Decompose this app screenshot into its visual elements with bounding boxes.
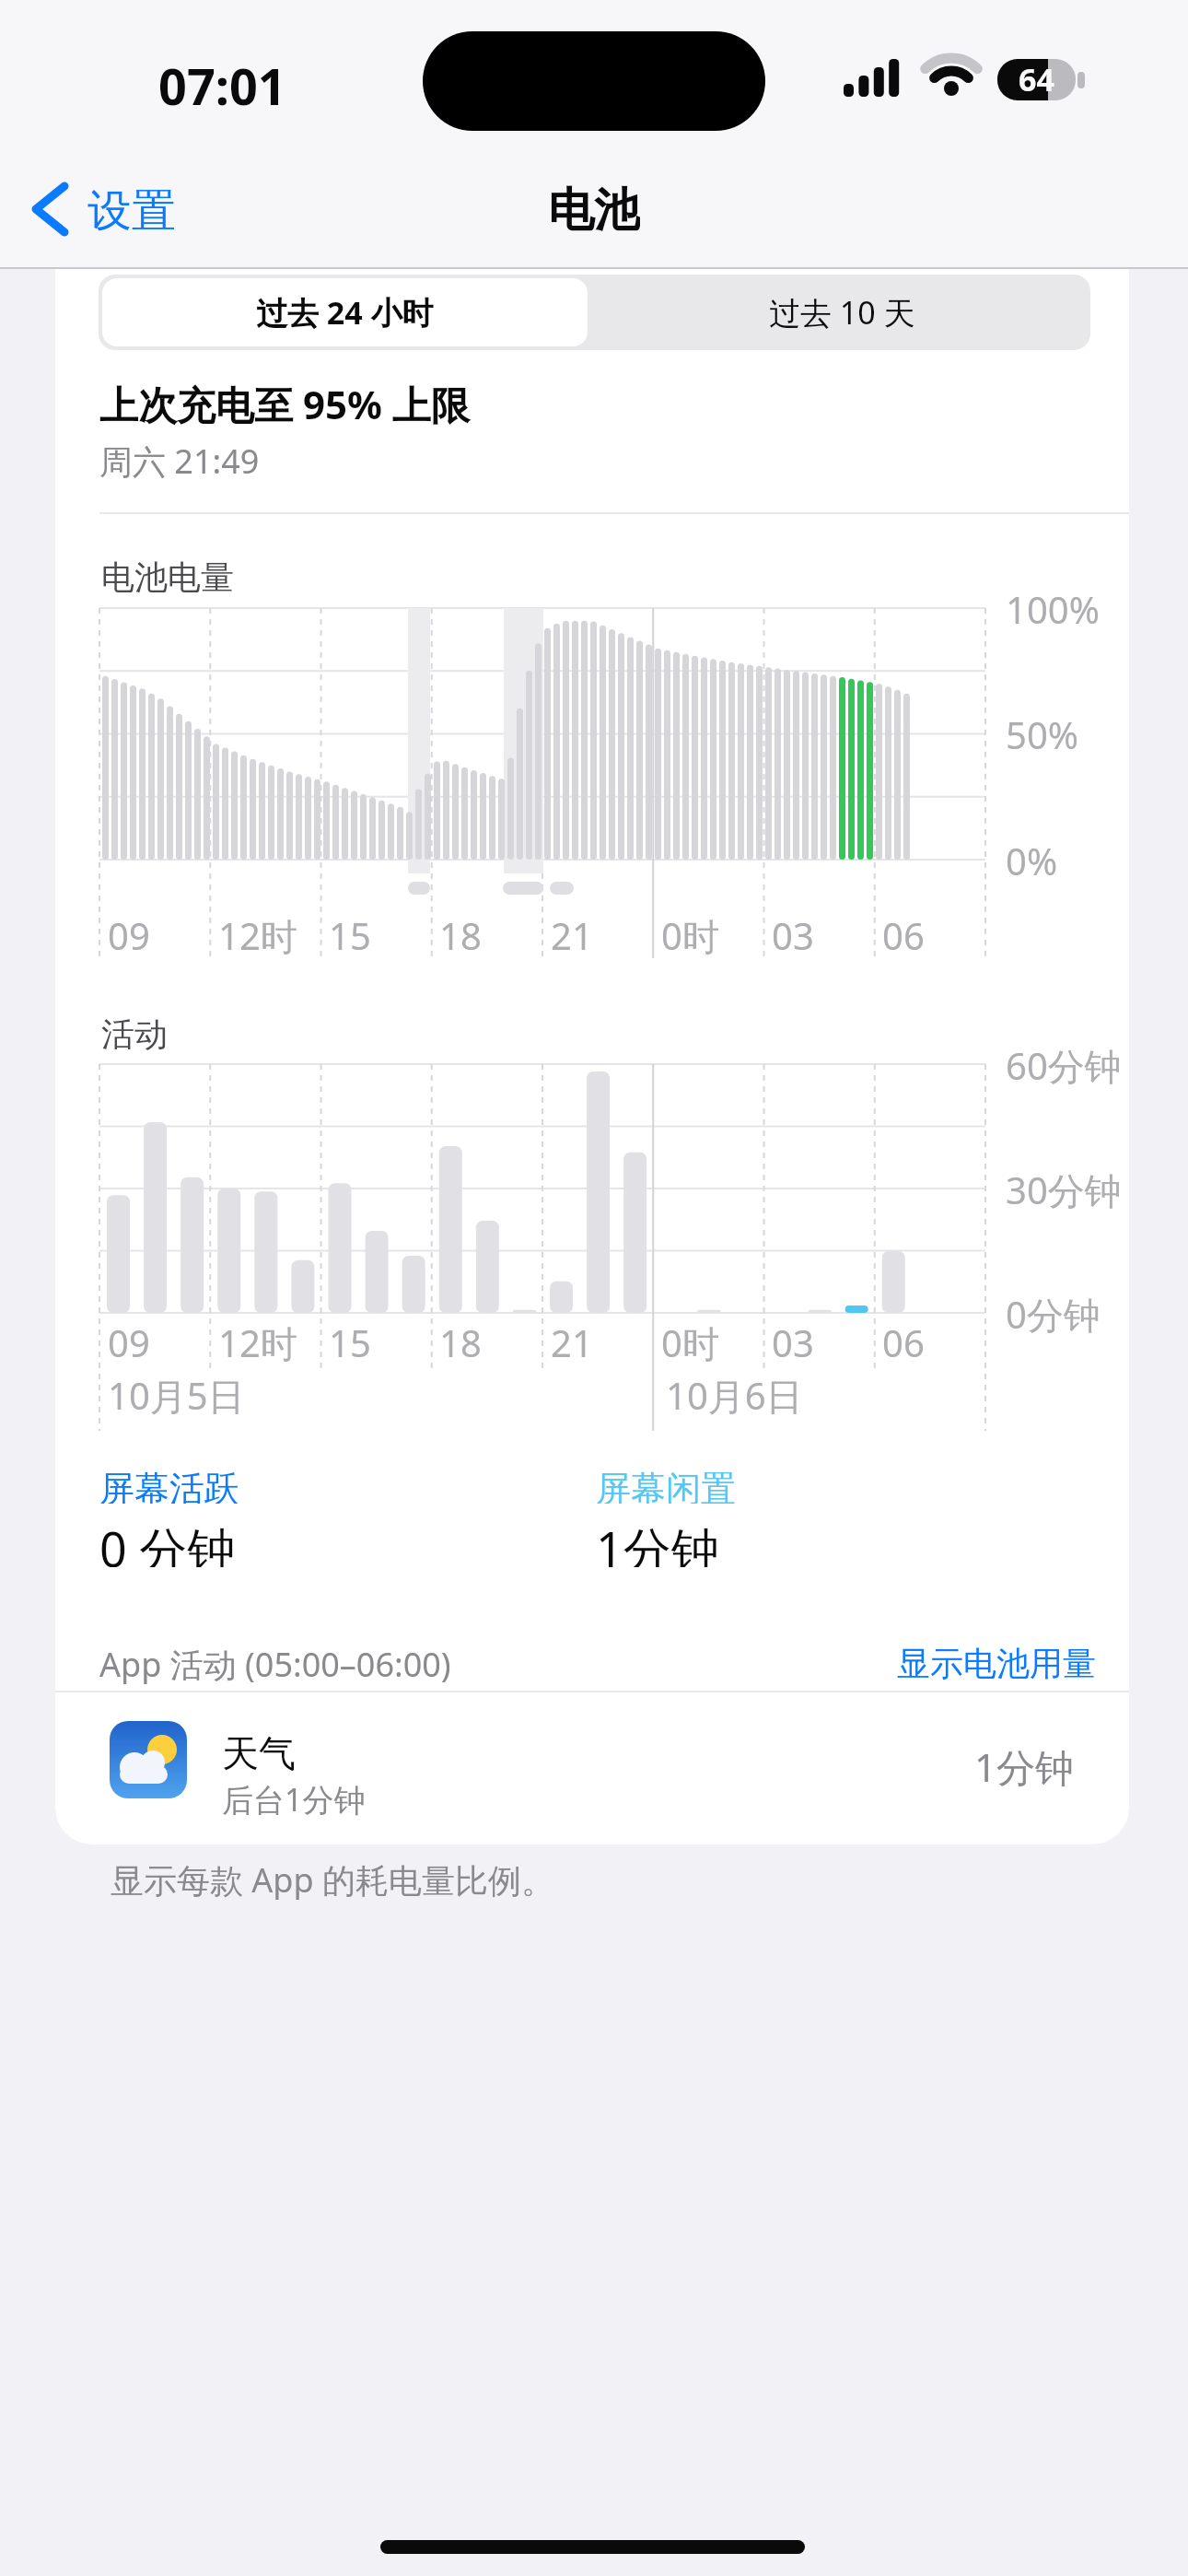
staticText: 设置 (87, 183, 176, 237)
staticText: 活动 (101, 1013, 168, 1055)
button[interactable] (28, 175, 203, 243)
staticText: 12时 (218, 1317, 297, 1362)
staticText: 100% (1006, 584, 1100, 632)
staticText: 1分钟 (974, 1740, 1075, 1788)
staticText: 0分钟 (1006, 1289, 1101, 1337)
staticText: 后台1分钟 (222, 1778, 366, 1819)
staticText: 0时 (661, 910, 719, 954)
staticText: 0% (1006, 836, 1058, 884)
staticText: 电池 (548, 181, 640, 237)
staticText: 18 (439, 1317, 482, 1362)
staticText: 03 (772, 1317, 814, 1362)
staticText: 18 (439, 910, 482, 954)
staticText: 07:01 (158, 52, 286, 111)
staticText: App 活动 (05:00–06:00) (99, 1642, 451, 1684)
staticText: 15 (329, 1317, 371, 1362)
staticText: 06 (882, 1317, 925, 1362)
button[interactable]: 过去 24 小时 (102, 278, 588, 346)
staticText: 06 (882, 910, 925, 954)
staticText: 64 (1019, 58, 1054, 100)
button[interactable]: 过去 10 天 (594, 275, 1090, 350)
staticText: 30分钟 (1006, 1165, 1122, 1212)
staticText: 电池电量 (101, 556, 234, 598)
staticText: 周六 21:49 (99, 439, 260, 484)
staticText: 1分钟 (596, 1516, 719, 1567)
staticText: 50% (1006, 709, 1078, 757)
staticText: 10月6日 (666, 1370, 803, 1418)
staticText: 显示每款 App 的耗电量比例。 (111, 1857, 555, 1900)
button[interactable]: 显示电池用量 (829, 1642, 1096, 1684)
staticText: 09 (108, 1317, 150, 1362)
staticText: 21 (551, 1317, 593, 1362)
staticText: 天气 (222, 1730, 296, 1776)
staticText: 03 (772, 910, 814, 954)
staticText: 过去 24 小时 (256, 291, 434, 334)
staticText: 0 分钟 (99, 1516, 236, 1567)
staticText: 0时 (661, 1317, 719, 1362)
staticText: 屏幕闲置 (596, 1467, 736, 1504)
button[interactable] (55, 1693, 1129, 1843)
staticText: 15 (329, 910, 371, 954)
staticText: 12时 (218, 910, 297, 954)
staticText: 21 (551, 910, 593, 954)
staticText: 60分钟 (1006, 1040, 1122, 1088)
staticText: 过去 10 天 (769, 291, 915, 334)
staticText: 09 (108, 910, 150, 954)
staticText: 屏幕活跃 (99, 1467, 239, 1504)
staticText: 显示电池用量 (897, 1643, 1096, 1684)
staticText: 上次充电至 95% 上限 (99, 378, 470, 430)
staticText: 10月5日 (108, 1370, 245, 1418)
